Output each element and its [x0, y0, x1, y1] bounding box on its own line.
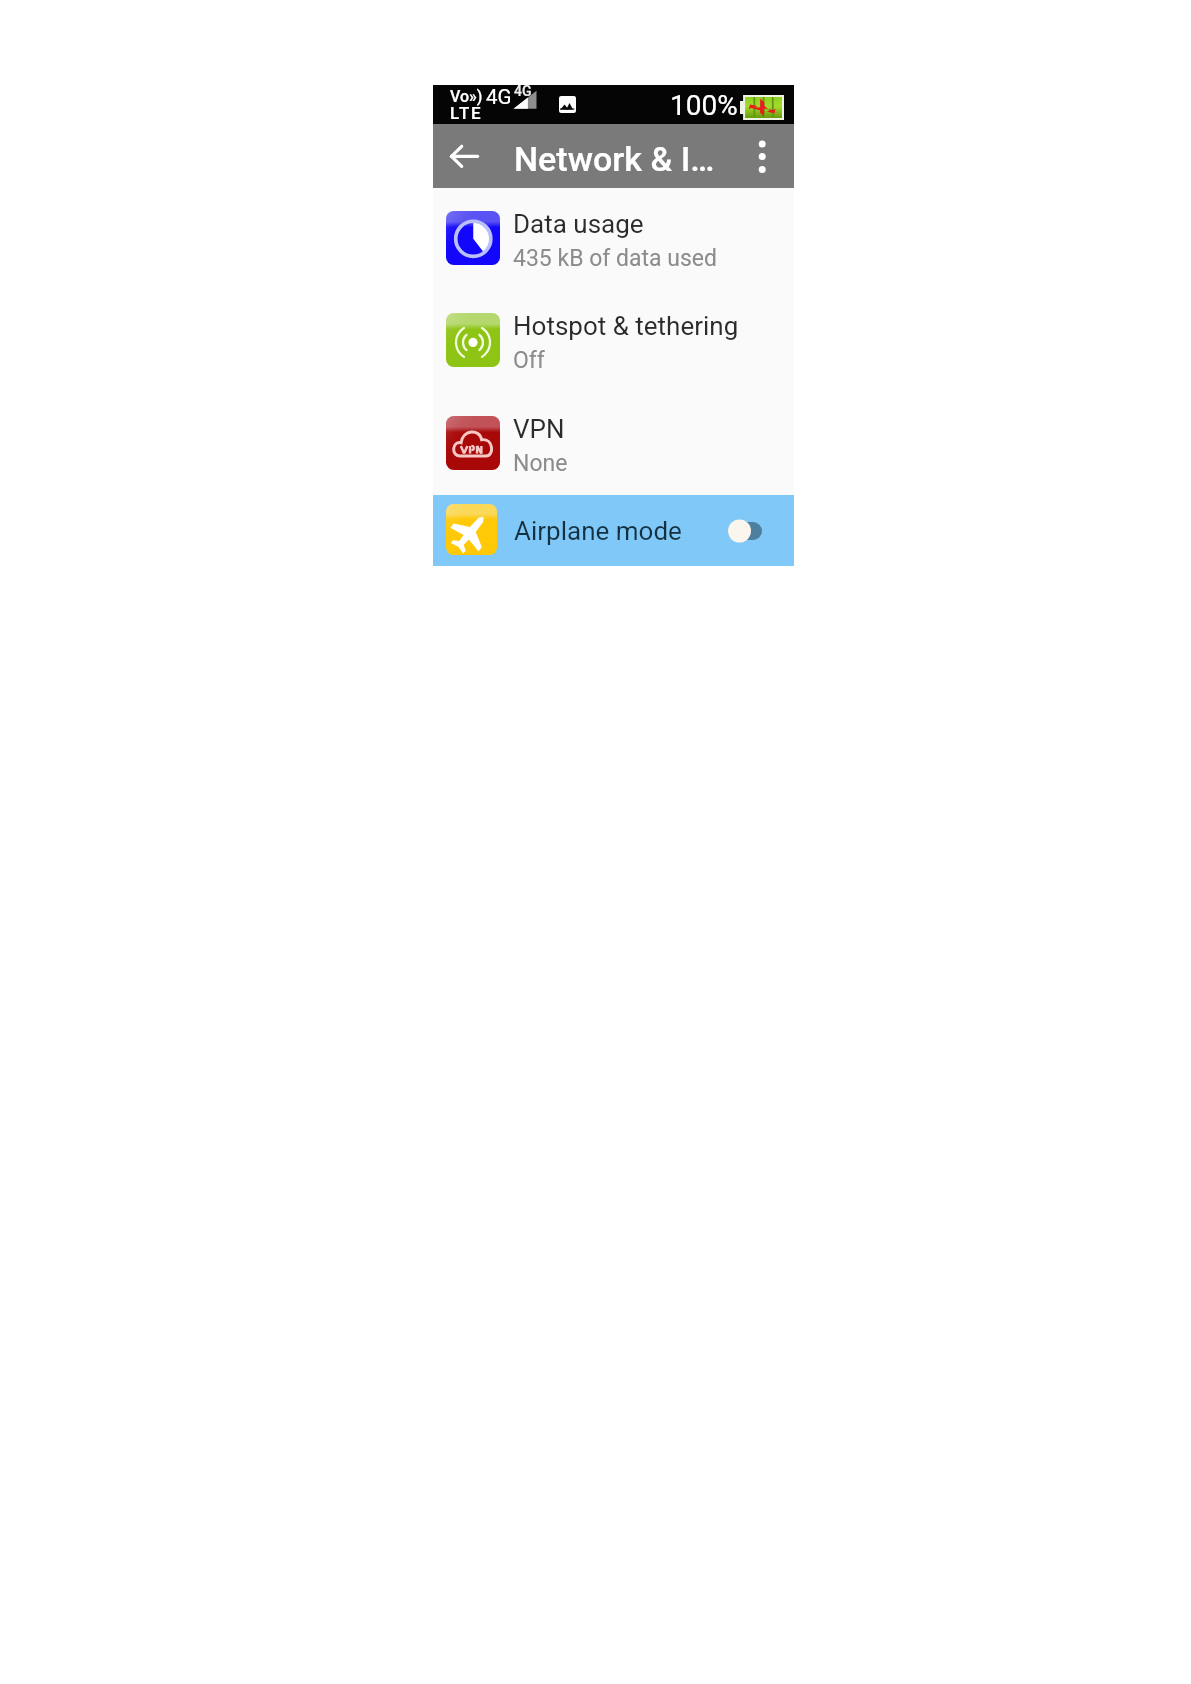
staticText: 435 kB of data used: [513, 245, 717, 272]
staticText: Off: [513, 347, 545, 374]
button[interactable]: VPN: [433, 405, 794, 481]
staticText: None: [513, 450, 568, 477]
staticText: 100%: [670, 89, 738, 122]
staticText: VPN: [513, 414, 565, 444]
staticText: Vo»): [450, 87, 483, 106]
staticText: Data usage: [513, 209, 644, 239]
button[interactable]: Airplane mode toggle: [724, 516, 764, 546]
staticText: LTE: [450, 103, 483, 123]
staticText: 4G: [486, 85, 512, 109]
button[interactable]: Airplane mode: [433, 495, 794, 566]
button[interactable]: More options: [743, 135, 779, 177]
staticText: Hotspot & tethering: [513, 311, 739, 341]
button[interactable]: Navigate up: [440, 130, 488, 182]
staticText: 4G: [514, 83, 532, 99]
staticText: Airplane mode: [514, 516, 682, 546]
staticText: Network & I…: [514, 139, 715, 179]
button[interactable]: Hotspot & tethering: [433, 302, 794, 378]
button[interactable]: Data usage: [433, 200, 794, 276]
